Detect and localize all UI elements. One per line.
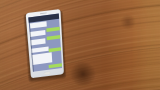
button[interactable]: Chat conversation on phone xyxy=(0,0,160,90)
